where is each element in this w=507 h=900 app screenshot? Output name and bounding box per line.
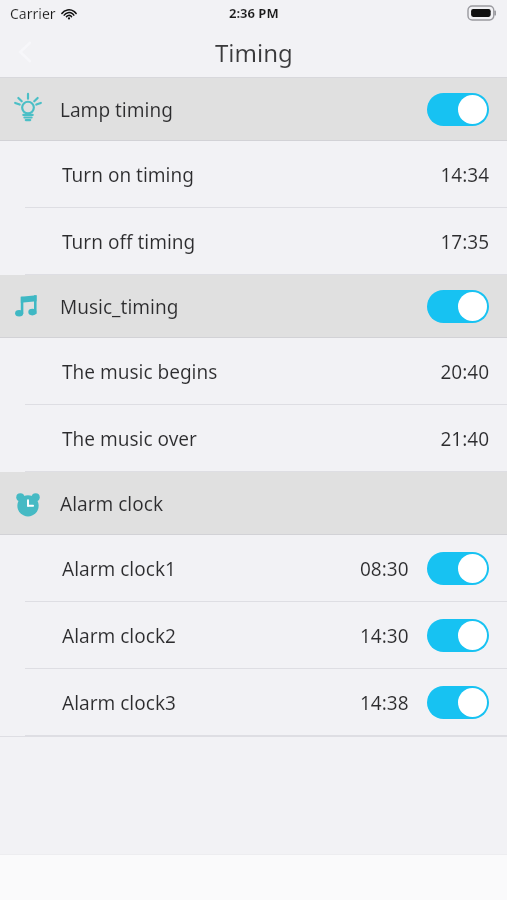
button[interactable]: The music over [0, 405, 507, 472]
button[interactable]: Turn off timing [0, 208, 507, 275]
staticText: Alarm clock3 [62, 690, 176, 716]
button[interactable]: Turn on timing [0, 141, 507, 208]
staticText: Alarm clock [60, 491, 164, 517]
staticText: The music over [62, 426, 197, 452]
staticText: 08:30 [360, 556, 409, 582]
button[interactable]: Toggle [427, 686, 489, 719]
staticText: Turn off timing [62, 229, 196, 255]
button[interactable]: Alarm clock [0, 472, 507, 535]
staticText: 2:36 PM [229, 4, 279, 22]
staticText: Lamp timing [60, 97, 173, 123]
staticText: Turn on timing [62, 162, 194, 188]
button[interactable]: Toggle [427, 290, 489, 323]
button[interactable]: Toggle [427, 93, 489, 126]
staticText: Music_timing [60, 294, 179, 320]
staticText: Timing [215, 36, 293, 69]
button[interactable]: The music begins [0, 338, 507, 405]
staticText: Alarm clock2 [62, 623, 176, 649]
button[interactable]: Lamp timing [0, 78, 507, 141]
button[interactable]: Alarm clock2 [0, 602, 507, 669]
staticText: 14:30 [360, 623, 409, 649]
staticText: 17:35 [440, 229, 489, 255]
button[interactable]: Alarm clock3 [0, 669, 507, 736]
staticText: 20:40 [440, 359, 489, 385]
button[interactable]: Back [0, 26, 52, 78]
button[interactable]: Toggle [427, 552, 489, 585]
staticText: 14:38 [360, 690, 409, 716]
button[interactable]: Toggle [427, 619, 489, 652]
button[interactable]: Alarm clock1 [0, 535, 507, 602]
staticText: Carrier [10, 4, 56, 23]
staticText: Alarm clock1 [62, 556, 176, 582]
staticText: The music begins [62, 359, 218, 385]
button[interactable]: Music_timing [0, 275, 507, 338]
staticText: 21:40 [440, 426, 489, 452]
staticText: 14:34 [440, 162, 489, 188]
